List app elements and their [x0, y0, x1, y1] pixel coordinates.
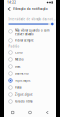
button[interactable]: Valsa — [4, 84, 56, 91]
button[interactable]: Zigue-zigue — [4, 91, 56, 98]
button[interactable]: Médio — [4, 56, 56, 63]
button[interactable]: Curto — [4, 49, 56, 56]
button[interactable]: Back — [6, 5, 12, 13]
staticText: estiver ativado — [15, 32, 34, 36]
staticText: Fora do ritmo — [15, 100, 33, 103]
button[interactable]: Não vibrar quando o som — [4, 27, 56, 37]
staticText: Tiquetaque — [15, 79, 31, 82]
staticText: Curto — [15, 51, 23, 54]
staticText: Zigue-zigue — [15, 93, 33, 96]
staticText: Valsa — [15, 86, 21, 89]
button[interactable]: Vibrar sempre — [4, 37, 56, 44]
staticText: Intensidade de vibração das notificações — [8, 17, 56, 21]
staticText: Batimento — [15, 72, 29, 75]
staticText: Médio — [15, 58, 24, 61]
staticText: Padrão — [8, 45, 19, 48]
staticText: Vibrar sempre — [15, 39, 34, 42]
button[interactable]: Back — [39, 108, 56, 117]
staticText: Base — [15, 65, 21, 68]
button[interactable]: Home — [21, 108, 39, 117]
button[interactable]: Fora do ritmo — [4, 98, 56, 105]
button[interactable]: Batimento — [4, 70, 56, 77]
staticText: Vibração da notificação — [13, 7, 48, 11]
button[interactable]: Recent apps — [4, 108, 21, 117]
staticText: 14:22 — [7, 1, 16, 4]
button[interactable]: Base — [4, 63, 56, 70]
staticText: Não vibrar quando o som — [15, 29, 49, 32]
button[interactable]: Tiquetaque — [4, 77, 56, 84]
